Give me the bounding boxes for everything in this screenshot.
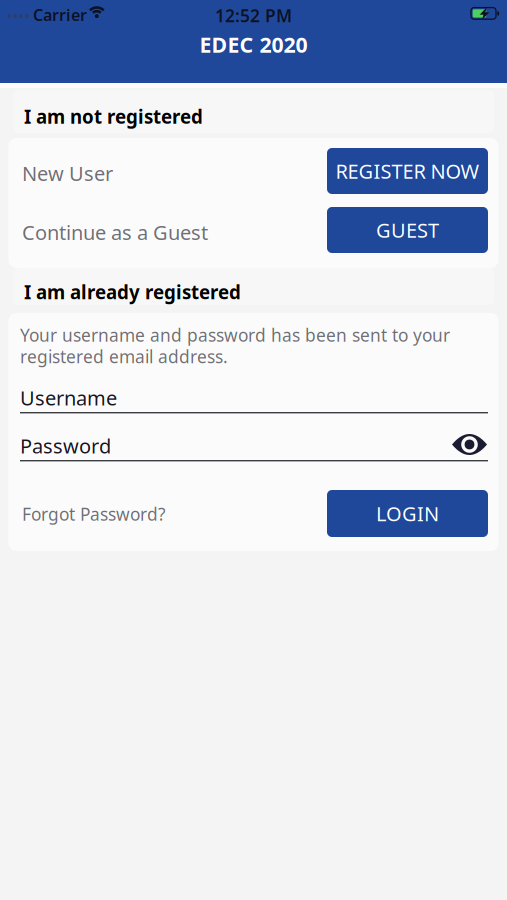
staticText: Forgot Password? [22,502,166,525]
staticText: GUEST [376,217,439,243]
staticText: Username [20,384,117,411]
button[interactable]: Show password [451,428,487,460]
staticText: 12:52 PM [215,4,292,27]
button[interactable]: Forgot Password? [22,502,166,525]
staticText: EDEC 2020 [199,30,307,58]
staticText: New User [22,160,113,187]
staticText: Password [20,432,111,459]
staticText: I am already registered [24,279,241,304]
button[interactable]: GUEST [327,207,488,253]
button[interactable]: LOGIN [327,490,488,537]
staticText: LOGIN [376,500,439,527]
button[interactable]: REGISTER NOW [327,148,488,194]
staticText: registered email address. [20,345,228,368]
staticText: Continue as a Guest [22,219,208,246]
staticText: Your username and password has been sent… [20,323,450,346]
staticText: I am not registered [24,104,203,129]
staticText: REGISTER NOW [335,158,479,184]
staticText: Carrier [33,4,87,25]
